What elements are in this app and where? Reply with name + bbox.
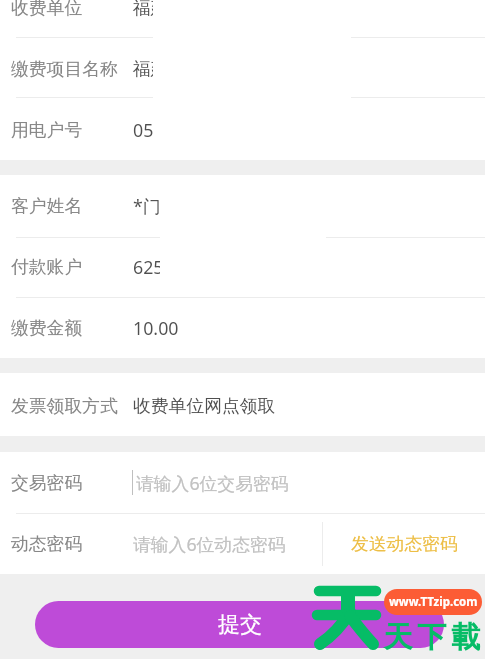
staticText: 6252****3847 [133, 255, 254, 279]
staticText: 发票领取方式 [11, 395, 118, 417]
button[interactable]: 收费单位 [0, 0, 485, 38]
button[interactable]: 用电户号 [0, 99, 485, 160]
staticText: 提交 [218, 611, 262, 639]
staticText: 发送动态密码 [351, 533, 458, 555]
staticText: 天下載 [381, 619, 483, 656]
staticText: 收费单位网点领取 [133, 395, 276, 417]
staticText: 缴费项目名称 [11, 58, 118, 80]
staticText: 客户姓名 [11, 195, 83, 217]
button[interactable]: 客户姓名 [0, 175, 485, 237]
button[interactable]: 缴费项目名称 [0, 39, 485, 99]
staticText: 0512345678 [133, 118, 235, 142]
staticText: 福建省电费代收 [133, 58, 258, 80]
staticText: 动态密码 [11, 533, 83, 555]
staticText: 福建省电力有限公司 [133, 0, 294, 19]
staticText: 10.00 [133, 316, 179, 340]
staticText: 请输入6位动态密码 [133, 532, 286, 556]
staticText: 交易密码 [11, 472, 83, 494]
staticText: 收费单位 [11, 0, 83, 19]
button[interactable]: 缴费金额 [0, 297, 485, 358]
button[interactable]: 发票领取方式 [0, 376, 485, 436]
staticText: 请输入6位交易密码 [136, 471, 289, 495]
staticText: 用电户号 [11, 119, 83, 141]
button[interactable]: 发送动态密码 [323, 513, 485, 574]
staticText: www.TTzip.com [389, 594, 478, 610]
button[interactable]: 动态密码 [0, 513, 485, 574]
staticText: 缴费金额 [11, 317, 83, 339]
staticText: 付款账户 [11, 256, 83, 278]
button[interactable]: 提交 [35, 601, 444, 648]
button[interactable]: 交易密码 [0, 452, 485, 513]
staticText: *门大大 [133, 194, 197, 218]
button[interactable]: 付款账户 [0, 237, 485, 297]
